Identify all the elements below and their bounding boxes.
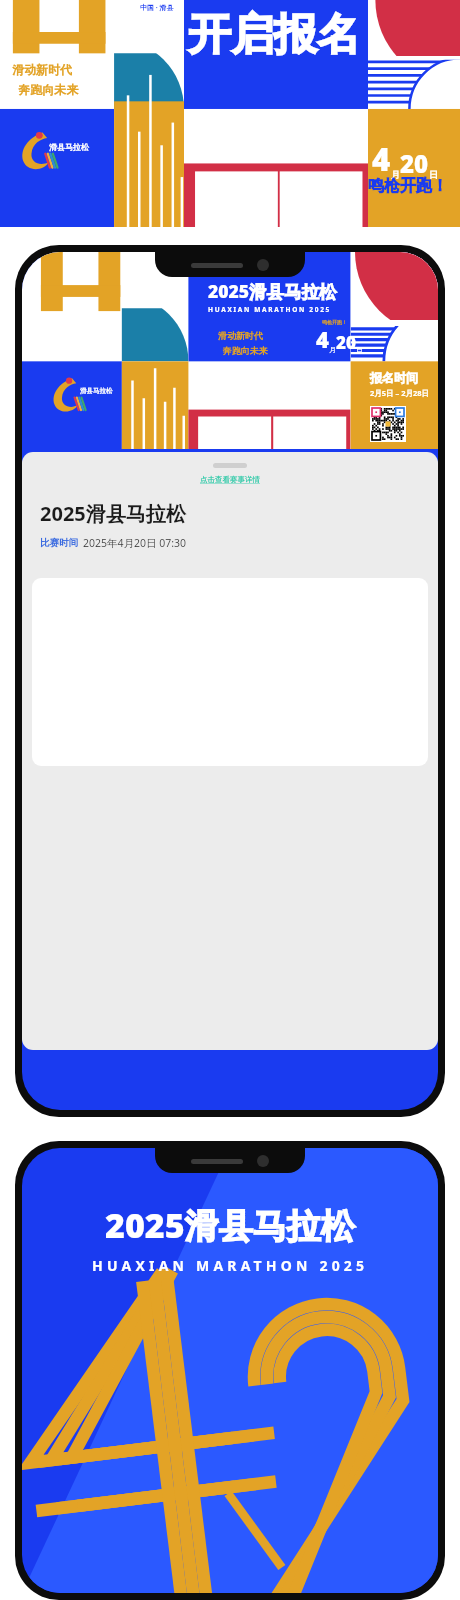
staticText: 滑动新时代 [218, 330, 263, 341]
button[interactable]: 点击查看赛事详情 [198, 473, 262, 486]
staticText: 滑县马拉松 [49, 142, 89, 152]
staticText: 月 [329, 345, 336, 354]
staticText: 2025滑县马拉松 [208, 279, 337, 303]
staticText: 4 [372, 138, 391, 180]
staticText: 中国 · 滑县 [140, 3, 174, 13]
staticText: 鸣枪开跑！ [368, 176, 448, 196]
staticText: 月 [391, 169, 400, 180]
staticText: 奔跑向未来 [12, 81, 79, 97]
staticText: HUAXIAN MARATHON 2025 [208, 305, 332, 314]
staticText: 日 [429, 169, 438, 180]
staticText: 点击查看赛事详情 [200, 475, 260, 484]
staticText: 2025滑县马拉松 [40, 500, 186, 527]
staticText: 2025年4月20日 07:30 [83, 536, 187, 550]
staticText: 奔跑向未来 [218, 344, 268, 356]
staticText: 日 [356, 345, 363, 354]
staticText: 20 [336, 331, 356, 354]
staticText: 中国 · 滑县 [164, 265, 196, 274]
staticText: 滑动新时代 [12, 62, 72, 77]
staticText: 鸣枪开跑！ [322, 319, 347, 325]
staticText: 20 [400, 147, 429, 180]
staticText: 比赛时间 [40, 537, 78, 549]
staticText: 滑县马拉松 [80, 387, 113, 395]
staticText: 2月5日 – 2月28日 [370, 388, 430, 398]
staticText: 4 [316, 324, 329, 354]
staticText: 报名时间 [370, 370, 418, 385]
staticText: 开启报名 [188, 8, 360, 62]
staticText: HUAXIAN MARATHON 2025 [92, 1256, 369, 1275]
staticText: 2025滑县马拉松 [105, 1202, 355, 1248]
